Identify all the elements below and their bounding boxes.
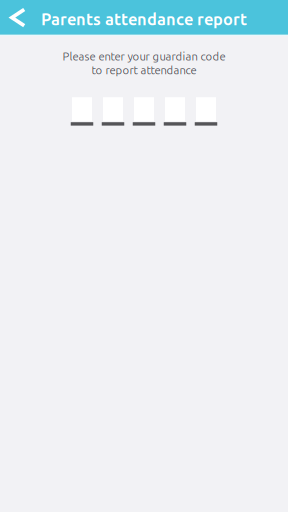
- button[interactable]: Back: [5, 0, 31, 34]
- staticText: Parents attendance report: [41, 10, 247, 28]
- staticText: to report attendance: [91, 64, 196, 76]
- staticText: Please enter your guardian code: [62, 50, 225, 63]
